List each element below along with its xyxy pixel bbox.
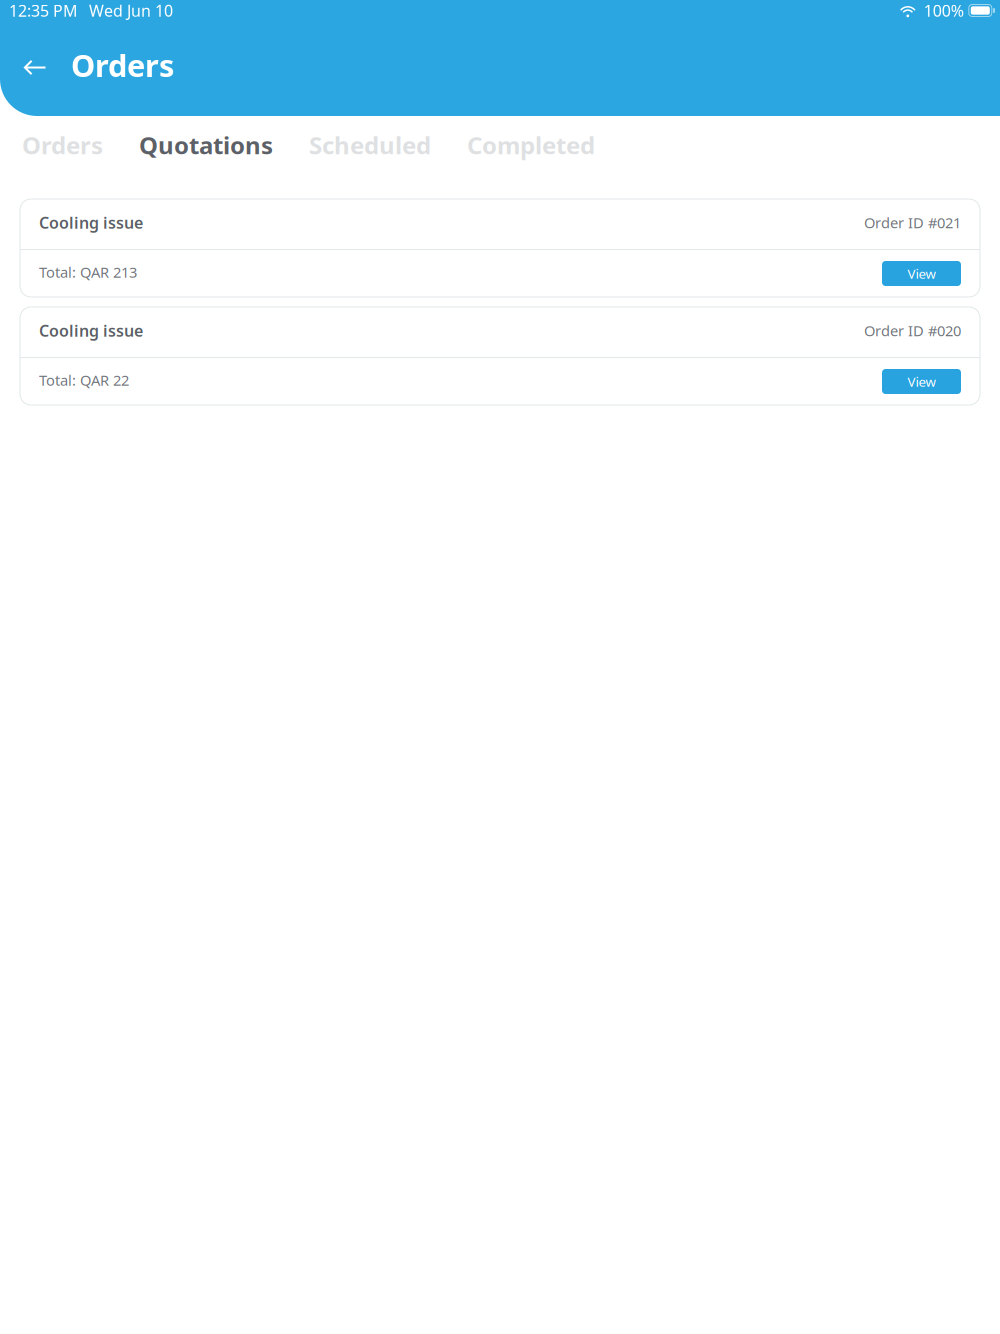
staticText: Wed Jun 10 <box>89 0 173 21</box>
button[interactable]: Quotations <box>139 130 273 160</box>
button[interactable]: Completed <box>467 130 595 160</box>
staticText: Quotations <box>139 129 273 161</box>
staticText: Total: QAR 213 <box>39 262 137 282</box>
staticText: View <box>907 265 935 282</box>
staticText: Cooling issue <box>39 320 143 341</box>
staticText: Order ID #021 <box>864 213 961 232</box>
staticText: Orders <box>71 45 174 85</box>
staticText: Completed <box>467 129 595 161</box>
button[interactable]: Back <box>11 38 59 92</box>
button[interactable]: View <box>882 366 961 394</box>
staticText: 12:35 PM <box>9 0 78 21</box>
staticText: View <box>907 373 935 390</box>
button[interactable]: View <box>882 258 961 286</box>
staticText: Scheduled <box>309 129 431 161</box>
staticText: Total: QAR 22 <box>39 370 129 390</box>
button[interactable]: Orders <box>22 130 103 160</box>
button[interactable]: Scheduled <box>309 130 431 160</box>
staticText: Order ID #020 <box>864 321 961 340</box>
staticText: 100% <box>924 0 964 21</box>
staticText: Orders <box>22 129 103 161</box>
staticText: Cooling issue <box>39 212 143 233</box>
